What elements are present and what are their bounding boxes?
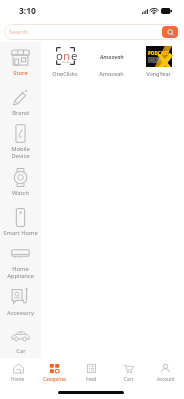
staticText: Store: [13, 69, 28, 77]
button[interactable]: Search: [4, 24, 180, 40]
button[interactable]: Account: [147, 358, 184, 387]
staticText: Accessory: [7, 309, 34, 317]
staticText: n: [63, 48, 71, 64]
staticText: 3:10: [19, 5, 36, 17]
staticText: Amoovah: [99, 70, 124, 77]
button[interactable]: Brand: [0, 82, 41, 122]
button[interactable]: Store: [0, 42, 41, 82]
staticText: Home: [11, 376, 25, 382]
staticText: OneClicks: [52, 70, 78, 77]
button[interactable]: Smart Home: [0, 202, 41, 242]
staticText: o: [56, 48, 63, 64]
staticText: VONGYEAR EPISODE 12: [148, 57, 163, 63]
staticText: PODCAST: [148, 50, 170, 56]
staticText: Feed: [86, 376, 97, 382]
button[interactable]: Home: [0, 358, 36, 387]
staticText: Brand: [12, 109, 29, 117]
staticText: Car: [16, 347, 26, 355]
staticText: Account: [157, 376, 175, 382]
button[interactable]: PODCAST: [135, 42, 182, 77]
button[interactable]: Amoovah: [88, 42, 135, 77]
staticText: Home Appliance: [7, 265, 34, 280]
staticText: Amoovah: [100, 53, 124, 60]
button[interactable]: Home Appliance: [0, 242, 41, 282]
staticText: Watch: [12, 189, 29, 197]
button[interactable]: Accessory: [0, 282, 41, 322]
staticText: Mobile Device: [11, 145, 30, 160]
button[interactable]: Watch: [0, 162, 41, 202]
button[interactable]: Search: [162, 26, 178, 38]
staticText: Search: [9, 28, 28, 36]
button[interactable]: Feed: [73, 358, 110, 387]
staticText: clicks: [62, 61, 70, 63]
button[interactable]: Mobile Device: [0, 122, 41, 162]
staticText: Categories: [43, 376, 67, 382]
button[interactable]: o: [41, 42, 88, 77]
button[interactable]: Car: [0, 322, 41, 358]
staticText: e: [71, 48, 75, 64]
button[interactable]: Cart: [110, 358, 147, 387]
staticText: Smart Home: [3, 229, 38, 237]
staticText: VongYear: [146, 70, 171, 77]
button[interactable]: Categories: [36, 358, 73, 387]
staticText: Cart: [124, 376, 134, 382]
